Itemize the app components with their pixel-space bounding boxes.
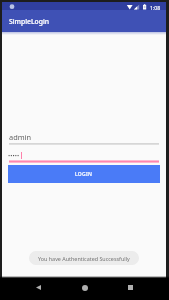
staticText: ••••• [8,152,20,160]
button[interactable]: Back [30,279,47,296]
button[interactable]: Recents [122,279,139,296]
button[interactable]: LOGIN [8,165,160,183]
button[interactable]: Home [76,279,93,296]
button[interactable]: admin [9,132,159,145]
staticText: You have Authenticated Successfully [38,255,130,262]
button[interactable]: ••••• [2,144,166,166]
staticText: admin [9,132,32,142]
staticText: LOGIN [75,171,93,178]
staticText: SimpleLogin [9,17,50,26]
staticText: 1:08 [150,4,161,11]
